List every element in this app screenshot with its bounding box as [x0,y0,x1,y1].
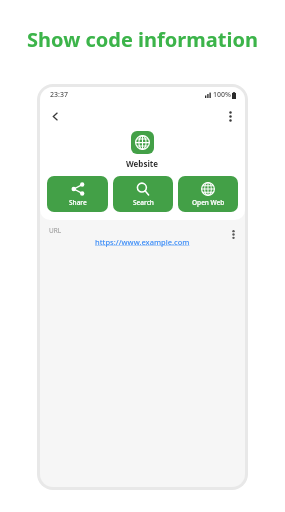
staticText: Website [126,158,159,169]
button[interactable]: URL options [225,226,241,242]
staticText: Open Web [192,198,225,207]
button[interactable]: Share [47,176,108,212]
button[interactable]: Back [46,107,64,125]
staticText: Share [69,198,87,207]
staticText: URL [49,226,62,235]
staticText: Show code information [0,26,285,53]
button[interactable]: Search [113,176,173,212]
button[interactable]: More options [221,107,239,125]
staticText: 100% [213,90,231,100]
staticText: 23:37 [50,90,68,100]
staticText: Search [133,198,154,207]
button[interactable]: https://www.example.com [95,237,190,247]
button[interactable]: Open Web [178,176,238,212]
